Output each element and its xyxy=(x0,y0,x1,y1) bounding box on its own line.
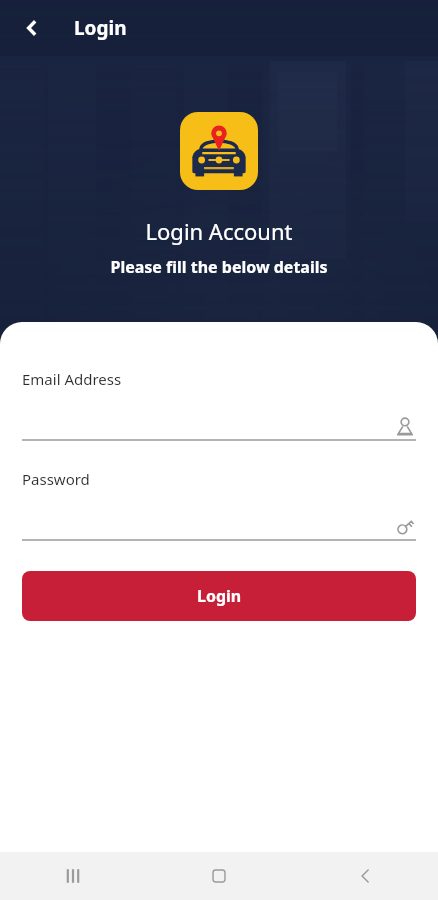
button[interactable]: Login xyxy=(22,571,416,621)
button[interactable] xyxy=(22,511,416,541)
button[interactable]: Back xyxy=(292,852,438,900)
staticText: Login xyxy=(74,15,127,41)
staticText: Password xyxy=(22,469,90,489)
button[interactable]: App logo xyxy=(180,112,258,190)
button[interactable] xyxy=(22,411,416,441)
staticText: Please fill the below details xyxy=(0,256,438,278)
staticText: Login xyxy=(197,585,242,607)
button[interactable]: Recent apps xyxy=(0,852,146,900)
button[interactable]: Home xyxy=(146,852,292,900)
staticText: Email Address xyxy=(22,369,122,389)
button[interactable]: Back xyxy=(10,6,54,50)
staticText: Login Account xyxy=(0,216,438,246)
